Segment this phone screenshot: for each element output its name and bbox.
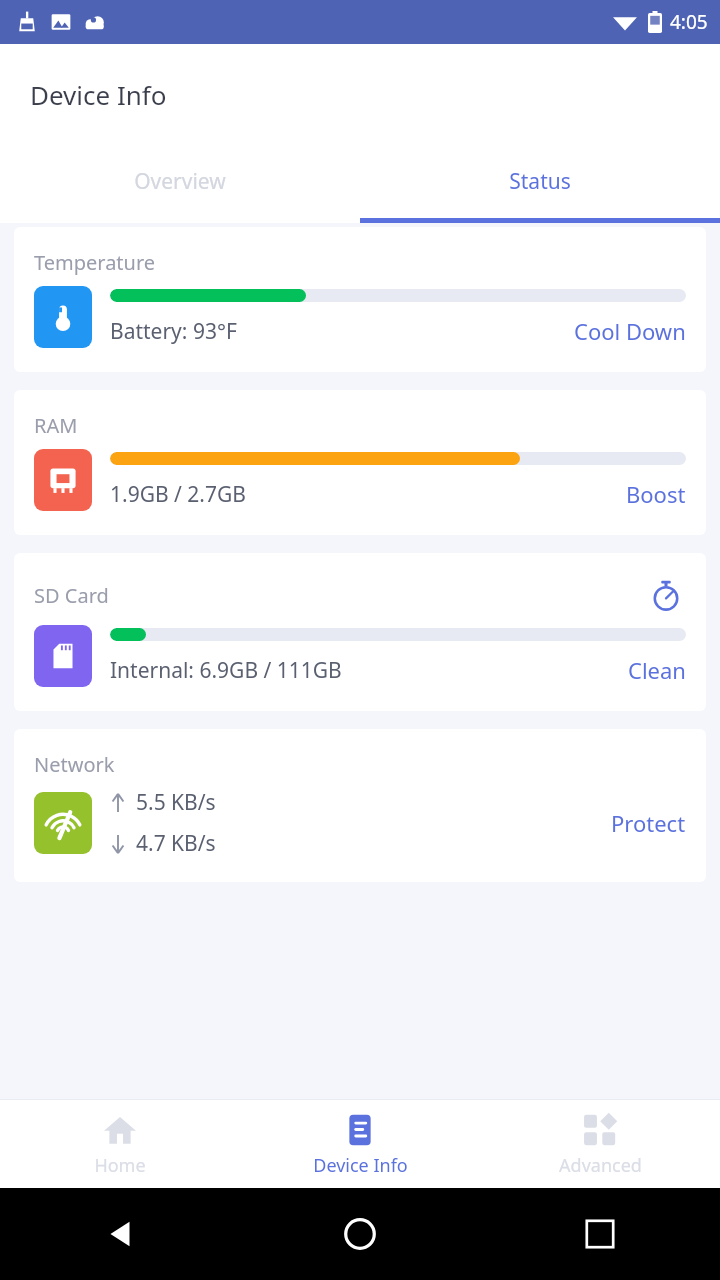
- button[interactable]: Cool Down: [574, 316, 686, 346]
- button[interactable]: Back: [103, 1217, 137, 1251]
- button[interactable]: Status: [360, 144, 720, 218]
- staticText: 5.5 KB/s: [136, 788, 216, 817]
- button[interactable]: RAM: [14, 390, 706, 535]
- staticText: 4:05: [670, 9, 708, 35]
- staticText: Advanced: [559, 1153, 642, 1178]
- staticText: Network: [34, 751, 115, 778]
- button[interactable]: Recent apps: [585, 1219, 615, 1249]
- button[interactable]: Network: [14, 729, 706, 882]
- staticText: Internal: 6.9GB / 111GB: [110, 656, 342, 685]
- staticText: Overview: [134, 167, 226, 196]
- button[interactable]: Boost: [626, 479, 686, 509]
- staticText: Status: [509, 167, 571, 196]
- staticText: Home: [94, 1153, 146, 1178]
- button[interactable]: Advanced: [480, 1100, 720, 1188]
- button[interactable]: Temperature: [14, 227, 706, 372]
- staticText: SD Card: [34, 582, 109, 609]
- staticText: Temperature: [34, 249, 156, 276]
- button[interactable]: Overview: [0, 144, 360, 218]
- button[interactable]: Protect: [611, 808, 686, 838]
- staticText: Battery: 93°F: [110, 317, 237, 346]
- button[interactable]: Clean: [628, 655, 686, 685]
- staticText: Device Info: [30, 77, 167, 112]
- button[interactable]: Home: [0, 1100, 240, 1188]
- button[interactable]: Scheduled clean: [646, 575, 686, 615]
- button[interactable]: Home: [343, 1217, 377, 1251]
- staticText: RAM: [34, 412, 78, 439]
- staticText: 4.7 KB/s: [136, 829, 216, 858]
- staticText: Device Info: [313, 1153, 408, 1178]
- button[interactable]: SD Card: [14, 553, 706, 711]
- button[interactable]: Device Info: [240, 1100, 480, 1188]
- staticText: 1.9GB / 2.7GB: [110, 480, 246, 509]
